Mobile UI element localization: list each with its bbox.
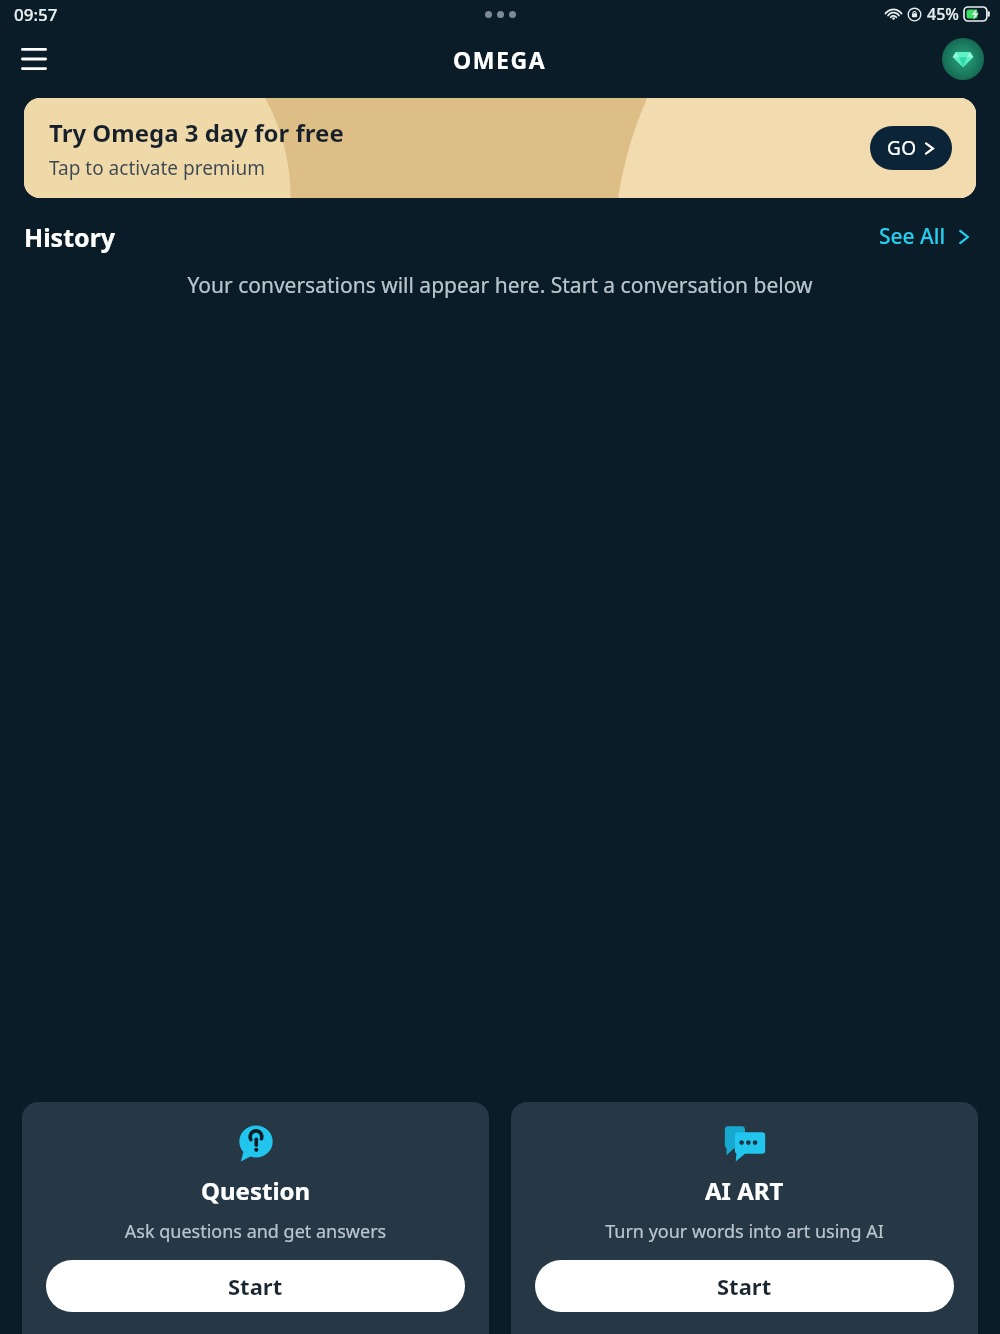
staticText: OMEGA — [453, 44, 547, 75]
staticText: Try Omega 3 day for free — [49, 116, 344, 149]
staticText: Tap to activate premium — [49, 155, 266, 181]
button[interactable]: Question — [22, 1102, 489, 1334]
staticText: AI ART — [705, 1174, 784, 1207]
button[interactable]: See All — [873, 216, 976, 257]
staticText: Your conversations will appear here. Sta… — [0, 271, 1000, 300]
button[interactable]: AI ART — [511, 1102, 978, 1334]
staticText: Ask questions and get answers — [46, 1219, 465, 1244]
staticText: Turn your words into art using AI — [535, 1219, 954, 1244]
staticText: 09:57 — [14, 3, 58, 26]
staticText: GO — [887, 135, 917, 161]
button[interactable]: Premium — [942, 38, 984, 80]
staticText: 45% — [927, 3, 959, 25]
button[interactable]: GO — [870, 126, 952, 170]
staticText: History — [24, 220, 116, 254]
button[interactable]: Try Omega 3 day for free — [24, 98, 976, 198]
button[interactable]: Start — [535, 1260, 954, 1312]
staticText: Question — [201, 1174, 311, 1207]
button[interactable]: Menu — [10, 35, 58, 83]
button[interactable]: Start — [46, 1260, 465, 1312]
staticText: See All — [879, 222, 946, 251]
staticText: Start — [717, 1271, 772, 1301]
staticText: Start — [228, 1271, 283, 1301]
